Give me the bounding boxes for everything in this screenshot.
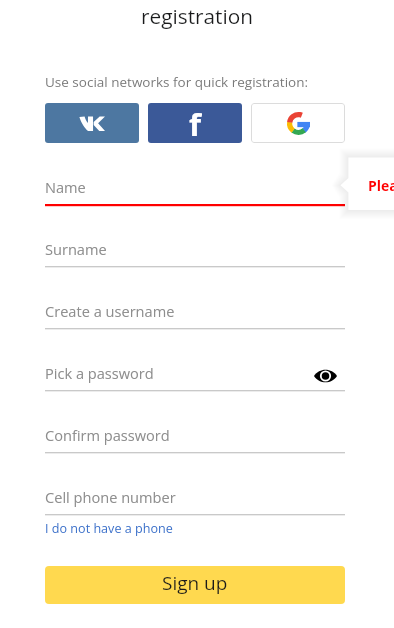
- button[interactable]: Cell phone number: [45, 455, 345, 517]
- button[interactable]: I do not have a phone: [45, 520, 173, 537]
- button[interactable]: Show password: [311, 362, 339, 390]
- button[interactable]: Pick a password: [45, 331, 345, 393]
- staticText: Use social networks for quick registrati…: [45, 73, 308, 91]
- button[interactable]: Create a username: [45, 269, 345, 331]
- staticText: Name: [45, 177, 86, 197]
- button[interactable]: Sign up with VK: [45, 103, 139, 143]
- staticText: Pick a password: [45, 363, 154, 383]
- button[interactable]: Confirm password: [45, 393, 345, 455]
- staticText: registration: [141, 2, 254, 30]
- button[interactable]: Sign up with Google: [251, 103, 345, 143]
- staticText: Confirm password: [45, 425, 170, 445]
- staticText: Cell phone number: [45, 487, 176, 507]
- button[interactable]: Sign up: [45, 566, 345, 604]
- staticText: Sign up: [162, 570, 228, 596]
- button[interactable]: Sign up with Facebook: [148, 103, 242, 143]
- staticText: Please: [368, 176, 394, 195]
- staticText: Create a username: [45, 301, 175, 321]
- staticText: f: [189, 103, 202, 143]
- staticText: Surname: [45, 239, 107, 259]
- button[interactable]: Name: [45, 145, 345, 207]
- button[interactable]: Surname: [45, 207, 345, 269]
